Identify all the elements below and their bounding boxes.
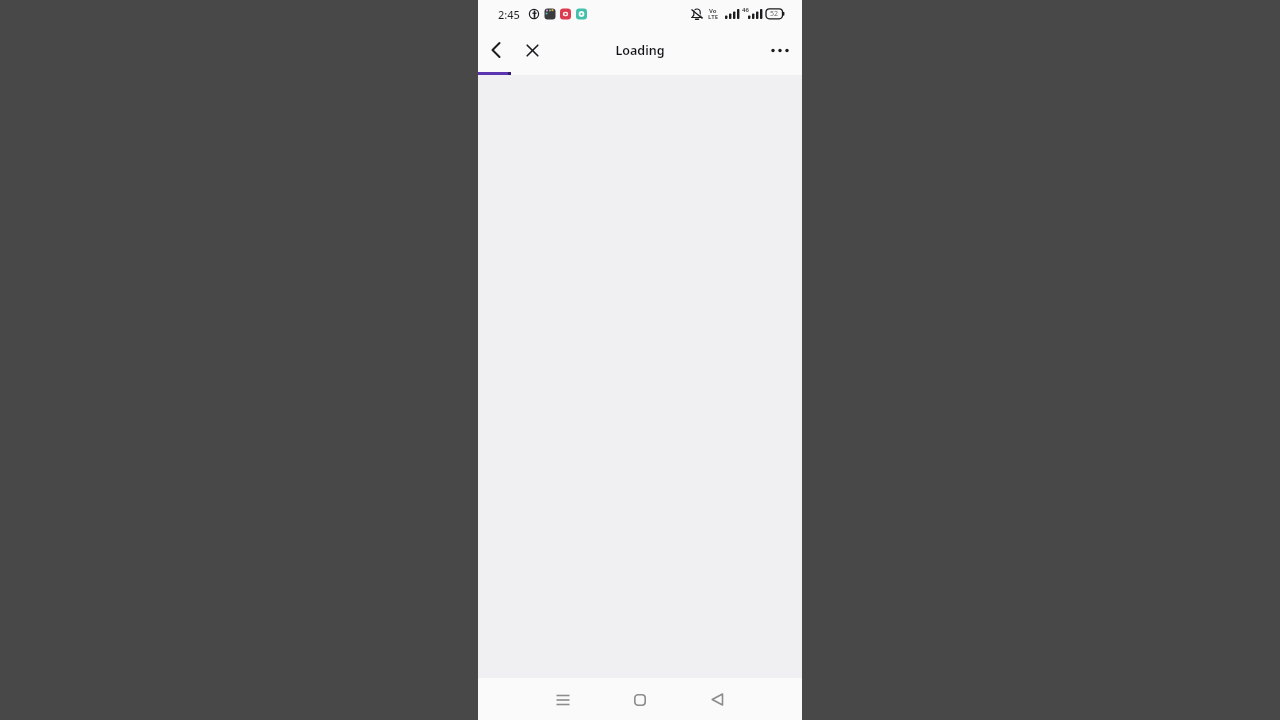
button[interactable] <box>701 683 734 716</box>
staticText: 52 <box>770 9 779 19</box>
staticText: 2:45 <box>498 7 520 22</box>
staticText: Vo <box>709 7 717 15</box>
button[interactable] <box>764 34 796 66</box>
staticText: 46 <box>742 6 749 14</box>
staticText: LTE <box>708 13 719 21</box>
button[interactable] <box>623 683 656 716</box>
button[interactable] <box>546 683 579 716</box>
button[interactable] <box>516 34 548 66</box>
button[interactable] <box>480 34 512 66</box>
staticText: Loading <box>615 42 665 59</box>
